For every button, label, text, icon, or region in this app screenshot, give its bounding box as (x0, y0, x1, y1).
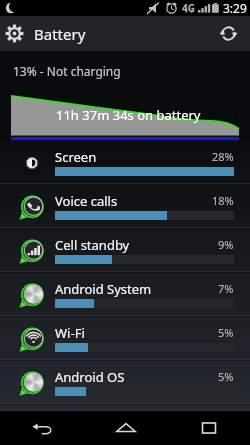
staticText: Cell standby (55, 236, 130, 254)
staticText: 3:29 (223, 0, 247, 16)
button[interactable]: Cell standby (0, 229, 250, 273)
staticText: Screen (55, 148, 97, 166)
staticText: Battery (34, 24, 86, 44)
button[interactable]: Android OS (0, 361, 250, 405)
button[interactable]: Back (0, 411, 84, 445)
staticText: 11h 37m 34s on battery (56, 106, 201, 124)
staticText: 28% (212, 149, 234, 164)
button[interactable]: Android System (0, 273, 250, 317)
staticText: 7% (218, 281, 234, 296)
staticText: 18% (212, 193, 234, 208)
staticText: Voice calls (55, 192, 118, 210)
staticText: 5% (218, 369, 234, 384)
staticText: 4G (182, 1, 195, 15)
button[interactable]: Screen (0, 141, 250, 185)
button[interactable]: Recents (167, 411, 250, 445)
staticText: 5% (218, 325, 234, 340)
button[interactable]: Refresh (206, 16, 250, 51)
button[interactable]: Wi-Fi (0, 317, 250, 361)
staticText: Wi-Fi (55, 324, 85, 342)
staticText: 9% (218, 237, 234, 252)
button[interactable]: Home (84, 411, 167, 445)
staticText: Android System (55, 280, 152, 298)
staticText: Android OS (55, 368, 125, 386)
button[interactable]: Voice calls (0, 185, 250, 229)
staticText: 13% - Not charging (13, 63, 121, 79)
